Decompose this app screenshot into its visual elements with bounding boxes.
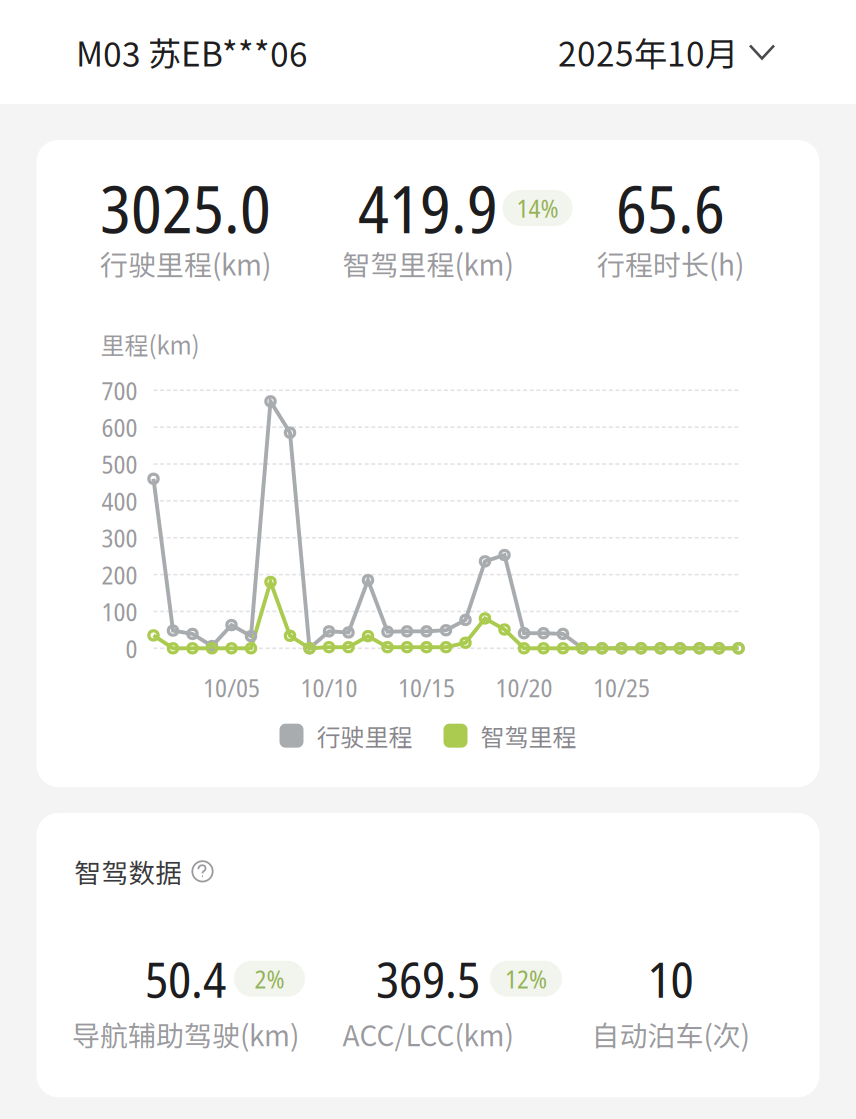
staticText: 行程时长(h) [597, 243, 744, 283]
staticText: 100 [101, 594, 137, 629]
staticText: M03 苏EB***06 [76, 28, 308, 76]
staticText: 2025年10月 [558, 28, 738, 76]
staticText: 600 [101, 410, 137, 444]
staticText: 400 [101, 484, 137, 518]
staticText: 14% [516, 191, 558, 225]
staticText: 700 [101, 373, 137, 407]
staticText: 自动泊车(次) [591, 1014, 749, 1054]
staticText: 导航辅助驾驶(km) [72, 1014, 299, 1054]
button[interactable]: 2025年10月 [558, 28, 774, 76]
staticText: 10 [647, 945, 693, 1012]
staticText: 里程(km) [100, 326, 199, 361]
staticText: 200 [101, 557, 137, 592]
staticText: 300 [101, 520, 137, 555]
staticText: 3025.0 [100, 163, 271, 252]
staticText: 419.9 [358, 163, 498, 252]
staticText: 10/05 [203, 670, 260, 704]
staticText: 10/25 [593, 670, 650, 704]
staticText: 50.4 [145, 945, 226, 1012]
staticText: 10/15 [398, 670, 455, 704]
staticText: 行驶里程 [316, 718, 412, 753]
staticText: 2% [254, 961, 284, 996]
staticText: 0 [125, 631, 137, 665]
staticText: 行驶里程(km) [100, 243, 271, 283]
staticText: 369.5 [376, 945, 480, 1012]
staticText: 智驾里程(km) [342, 243, 513, 283]
staticText: 10/20 [495, 670, 552, 704]
staticText: 12% [505, 961, 547, 996]
staticText: 10/10 [300, 670, 357, 704]
staticText: 65.6 [616, 163, 725, 252]
staticText: 智驾里程 [480, 718, 576, 753]
staticText: ACC/LCC(km) [342, 1014, 513, 1054]
staticText: 500 [101, 447, 137, 481]
staticText: 智驾数据 [74, 852, 182, 891]
